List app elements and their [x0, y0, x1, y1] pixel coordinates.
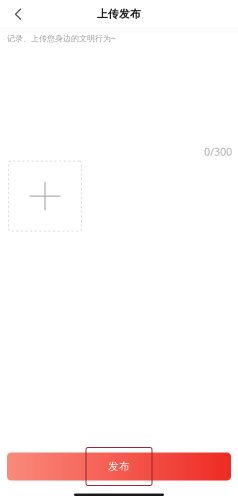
button[interactable]: Description, 0 of 300 characters: [0, 44, 238, 159]
staticText: 0/300: [204, 144, 232, 159]
button[interactable]: Add photo: [8, 161, 82, 232]
button[interactable]: Back: [5, 1, 31, 27]
staticText: 上传发布: [97, 7, 141, 20]
staticText: 发布: [108, 460, 130, 473]
staticText: 记录、上传您身边的文明行为~: [7, 33, 116, 44]
button[interactable]: 发布: [7, 452, 231, 480]
